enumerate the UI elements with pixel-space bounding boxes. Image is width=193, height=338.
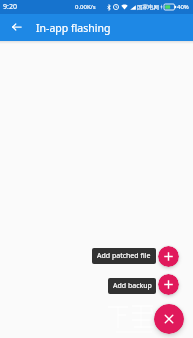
button[interactable]: Close menu: [154, 304, 184, 334]
button[interactable]: Add backup: [108, 278, 156, 294]
button[interactable]: Add backup: [158, 274, 179, 295]
staticText: Add backup: [113, 281, 152, 291]
staticText: 40%: [177, 3, 189, 11]
staticText: 国家电网: [137, 4, 159, 11]
button[interactable]: Add patched file: [92, 248, 156, 264]
staticText: 9:20: [3, 2, 17, 12]
staticText: In-app flashing: [36, 21, 111, 35]
button[interactable]: Back: [8, 18, 26, 36]
staticText: Add patched file: [97, 251, 151, 261]
staticText: 0.00K/s: [75, 3, 96, 11]
button[interactable]: Add patched file: [158, 246, 179, 267]
